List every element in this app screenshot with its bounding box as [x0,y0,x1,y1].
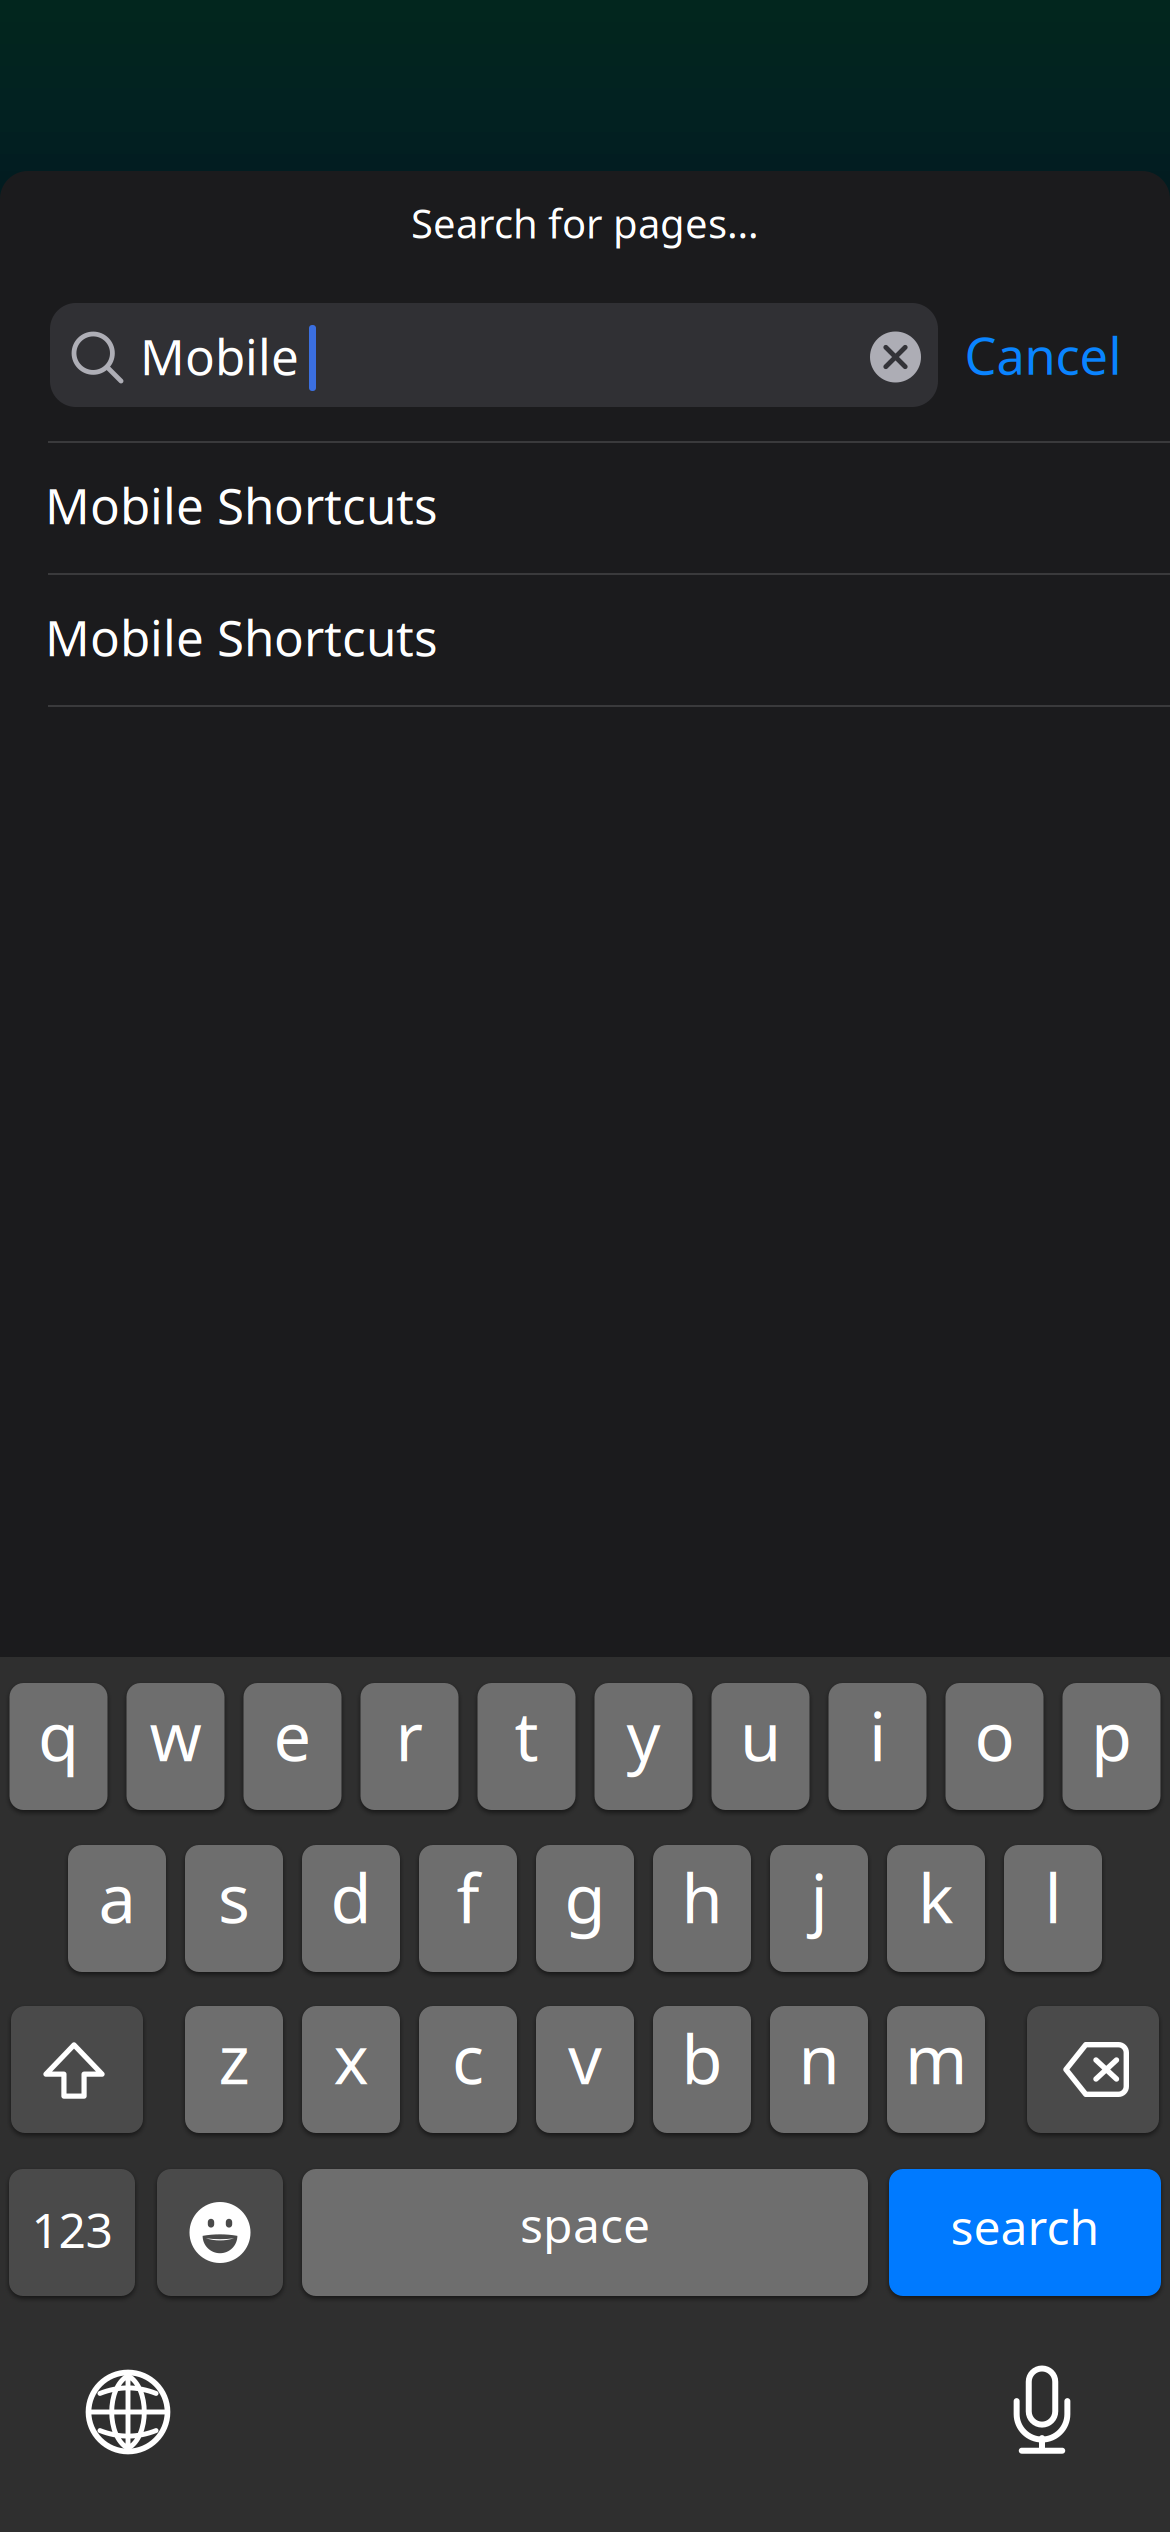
staticText: search [950,2195,1099,2258]
button[interactable]: z [185,2006,283,2133]
button[interactable]: i [828,1683,926,1810]
button[interactable]: p [1062,1683,1160,1810]
button[interactable]: x [302,2006,400,2133]
button[interactable]: Shift [11,2006,143,2133]
staticText: h [681,1853,722,1942]
staticText: Mobile Shortcuts [45,604,438,670]
button[interactable]: k [887,1845,985,1972]
button[interactable]: b [653,2006,751,2133]
button[interactable]: Cancel [938,303,1148,407]
staticText: Search for pages… [411,196,759,249]
button[interactable]: q [9,1683,107,1810]
button[interactable]: u [711,1683,809,1810]
button[interactable]: w [126,1683,224,1810]
button[interactable]: r [360,1683,458,1810]
button[interactable]: c [419,2006,517,2133]
staticText: t [514,1691,538,1780]
staticText: y [626,1691,660,1780]
button[interactable]: l [1004,1845,1102,1972]
staticText: j [810,1853,827,1942]
staticText: c [452,2014,484,2103]
button[interactable]: f [419,1845,517,1972]
staticText: r [395,1691,423,1780]
button[interactable]: h [653,1845,751,1972]
staticText: l [1044,1853,1061,1942]
staticText: o [974,1691,1014,1780]
button[interactable]: s [185,1845,283,1972]
staticText: Mobile Shortcuts [45,472,438,538]
staticText: q [38,1691,79,1780]
button[interactable]: a [68,1845,166,1972]
staticText: a [98,1853,135,1942]
staticText: x [333,2014,368,2103]
staticText: z [218,2014,249,2103]
staticText: w [149,1691,201,1780]
button[interactable]: o [945,1683,1043,1810]
button[interactable]: g [536,1845,634,1972]
button[interactable]: v [536,2006,634,2133]
staticText: u [740,1691,781,1780]
button[interactable]: n [770,2006,868,2133]
staticText: e [273,1691,311,1780]
button[interactable]: e [243,1683,341,1810]
staticText: m [905,2014,967,2103]
staticText: p [1091,1691,1132,1780]
button[interactable]: t [477,1683,575,1810]
staticText: k [918,1853,954,1942]
staticText: b [681,2014,722,2103]
staticText: i [869,1691,886,1780]
staticText: s [218,1853,250,1942]
staticText: g [564,1853,605,1942]
staticText: Cancel [964,321,1121,389]
staticText: n [798,2014,839,2103]
button[interactable]: d [302,1845,400,1972]
button[interactable]: Dictation [986,2367,1098,2457]
button[interactable]: Next keyboard [72,2367,184,2457]
button[interactable]: space [302,2169,868,2296]
staticText: 123 [31,2198,112,2261]
button[interactable]: 123 [9,2169,135,2296]
button[interactable]: m [887,2006,985,2133]
button[interactable]: Mobile Shortcuts [0,443,1170,573]
staticText: v [568,2014,602,2103]
staticText: f [456,1853,479,1942]
button[interactable]: Mobile Shortcuts [0,575,1170,705]
button[interactable]: search [889,2169,1161,2296]
button[interactable]: y [594,1683,692,1810]
staticText: space [520,2193,650,2256]
button[interactable]: Delete [1027,2006,1159,2133]
staticText: Mobile [140,323,299,389]
staticText: d [330,1853,371,1942]
button[interactable]: j [770,1845,868,1972]
button[interactable]: Emoji [157,2169,283,2296]
